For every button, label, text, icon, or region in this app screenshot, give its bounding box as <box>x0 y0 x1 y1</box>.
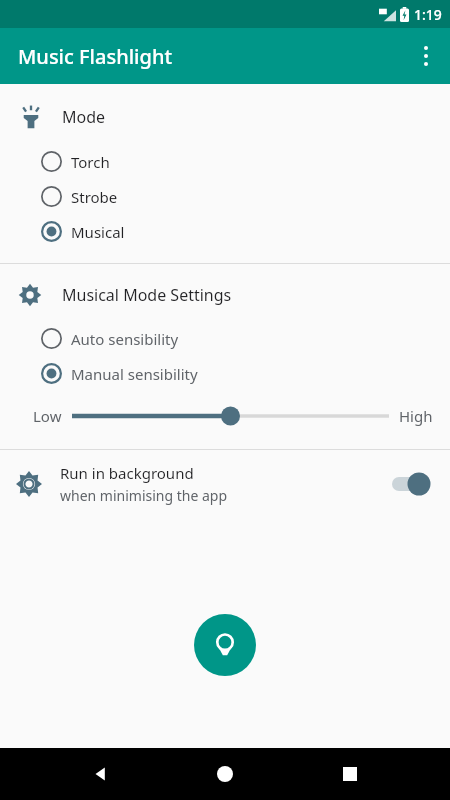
button[interactable]: Auto sensibility <box>0 321 450 356</box>
staticText: Auto sensibility <box>71 329 179 349</box>
staticText: Mode <box>62 106 106 128</box>
button[interactable]: Strobe <box>0 179 450 214</box>
staticText: Musical <box>71 222 125 242</box>
staticText: Run in background <box>60 463 194 483</box>
staticText: Music Flashlight <box>18 43 173 70</box>
button[interactable]: Manual sensibility <box>0 356 450 391</box>
button[interactable]: Torch <box>0 144 450 179</box>
button[interactable]: Toggle flashlight <box>194 614 256 676</box>
staticText: Torch <box>71 152 110 172</box>
button[interactable]: More options <box>402 32 450 80</box>
staticText: Musical Mode Settings <box>62 284 232 306</box>
button[interactable]: Run in background <box>0 450 450 518</box>
staticText: Low <box>33 406 62 426</box>
staticText: Manual sensibility <box>71 364 198 384</box>
button[interactable]: Recents <box>326 750 374 798</box>
button[interactable]: Back <box>76 750 124 798</box>
staticText: when minimising the app <box>60 486 228 505</box>
staticText: 1:19 <box>414 5 442 24</box>
button[interactable]: Musical <box>0 214 450 249</box>
staticText: Strobe <box>71 187 118 207</box>
button[interactable] <box>62 401 399 431</box>
staticText: High <box>399 406 433 426</box>
button[interactable]: Home <box>201 750 249 798</box>
